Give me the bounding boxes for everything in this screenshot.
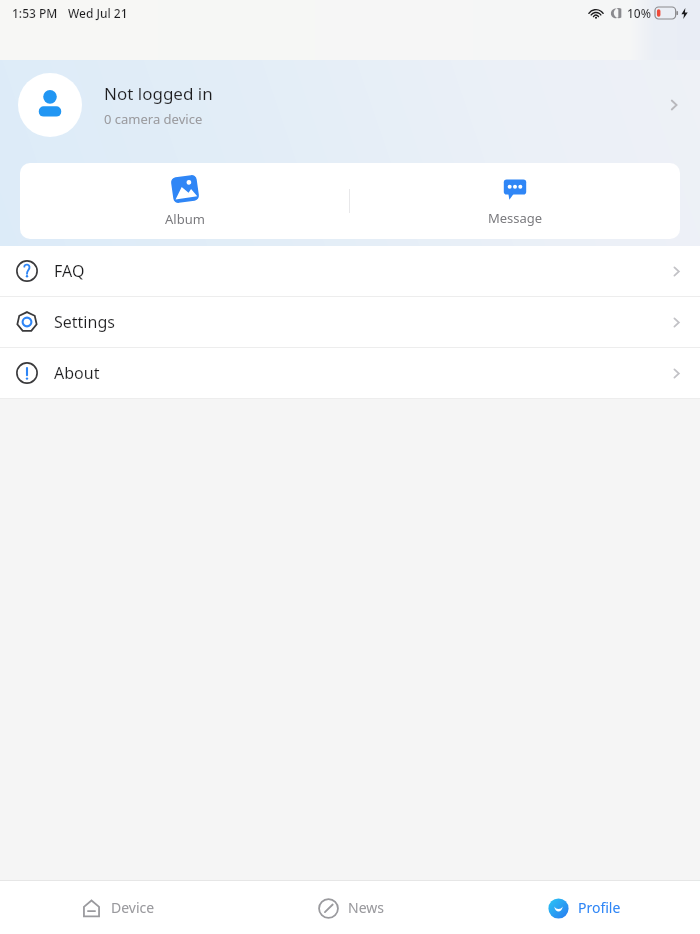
staticText: 10% (627, 5, 651, 21)
staticText: Settings (54, 311, 115, 333)
staticText: Device (111, 898, 155, 917)
button[interactable]: Album (20, 163, 349, 239)
button[interactable]: Profile (467, 881, 700, 934)
button[interactable]: News (234, 881, 467, 934)
staticText: FAQ (54, 260, 85, 282)
button[interactable]: Not logged in (0, 73, 700, 137)
staticText: Message (488, 209, 543, 227)
staticText: Not logged in (104, 82, 213, 105)
staticText: Album (165, 210, 205, 228)
staticText: About (54, 362, 100, 384)
staticText: News (348, 898, 384, 917)
staticText: 1:53 PM (12, 5, 58, 21)
staticText: Wed Jul 21 (68, 5, 128, 21)
button[interactable]: About (0, 348, 700, 398)
other: News (318, 898, 339, 919)
button[interactable]: Message (350, 163, 680, 239)
button[interactable]: FAQ (0, 246, 700, 296)
staticText: 0 camera device (104, 110, 203, 128)
other: Device (81, 898, 102, 919)
button[interactable]: Device (0, 881, 234, 934)
other: Profile (548, 898, 569, 919)
button[interactable]: Settings (0, 297, 700, 347)
staticText: Profile (578, 898, 621, 917)
